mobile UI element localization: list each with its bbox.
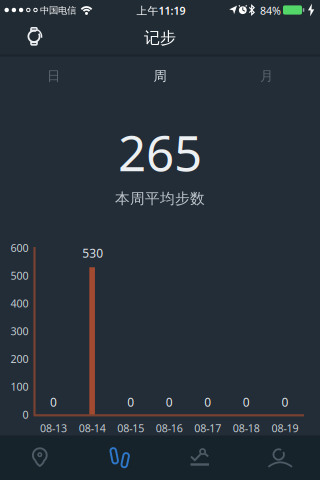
staticText: 08-13 [40,421,67,435]
staticText: 记步 [144,28,176,48]
staticText: 08-18 [233,421,260,435]
staticText: 08-17 [194,421,221,435]
button[interactable]: 日 [0,58,107,94]
staticText: 08-14 [79,421,106,435]
staticText: 08-15 [117,421,144,435]
button[interactable]: Watch device [14,20,54,56]
staticText: 0 [166,394,173,410]
staticText: 中国电信 [40,5,76,16]
staticText: 本周平均步数 [115,189,205,207]
staticText: 200 [10,352,28,366]
button[interactable]: 周 [107,58,213,94]
staticText: 周 [153,68,166,84]
staticText: 08-19 [271,421,298,435]
staticText: 400 [10,296,28,310]
staticText: 530 [82,245,103,261]
staticText: 上午11:19 [136,3,185,18]
staticText: 0 [281,394,288,410]
staticText: 08-16 [156,421,183,435]
button[interactable]: Steps [80,437,160,480]
staticText: 0 [22,407,28,422]
staticText: 600 [10,241,28,255]
staticText: 0 [127,394,134,410]
button[interactable]: 月 [213,58,320,94]
staticText: 月 [260,68,273,84]
button[interactable]: Statistics [160,437,240,480]
staticText: 0 [204,394,211,410]
staticText: 84% [260,3,281,18]
staticText: 300 [10,324,28,338]
button[interactable]: Profile [240,437,320,480]
staticText: 0 [243,394,250,410]
button[interactable]: Location [0,437,80,480]
staticText: 100 [10,380,28,394]
staticText: 0 [50,394,57,410]
staticText: 日 [47,68,60,84]
staticText: 265 [118,119,202,185]
staticText: 500 [10,268,28,283]
